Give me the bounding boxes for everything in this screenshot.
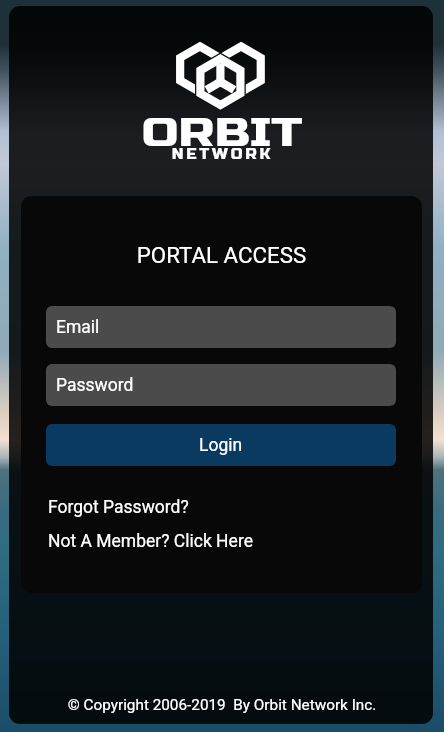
staticText: PORTAL ACCESS [21,242,422,268]
button[interactable]: Login [46,424,396,466]
staticText: Email [56,317,100,338]
staticText: ORBIT [141,110,302,157]
button[interactable]: Password [46,364,396,406]
staticText: NETWORK [172,145,273,163]
button[interactable]: Forgot Password? [48,497,189,518]
button[interactable]: Email [46,306,396,348]
staticText: Login [199,435,243,456]
staticText: Not A Member? Click Here [48,531,253,552]
button[interactable]: Not A Member? Click Here [48,531,253,552]
staticText: Password [56,375,134,396]
staticText: Forgot Password? [48,497,189,518]
staticText: © Copyright 2006-2019 By Orbit Network I… [0,696,444,714]
